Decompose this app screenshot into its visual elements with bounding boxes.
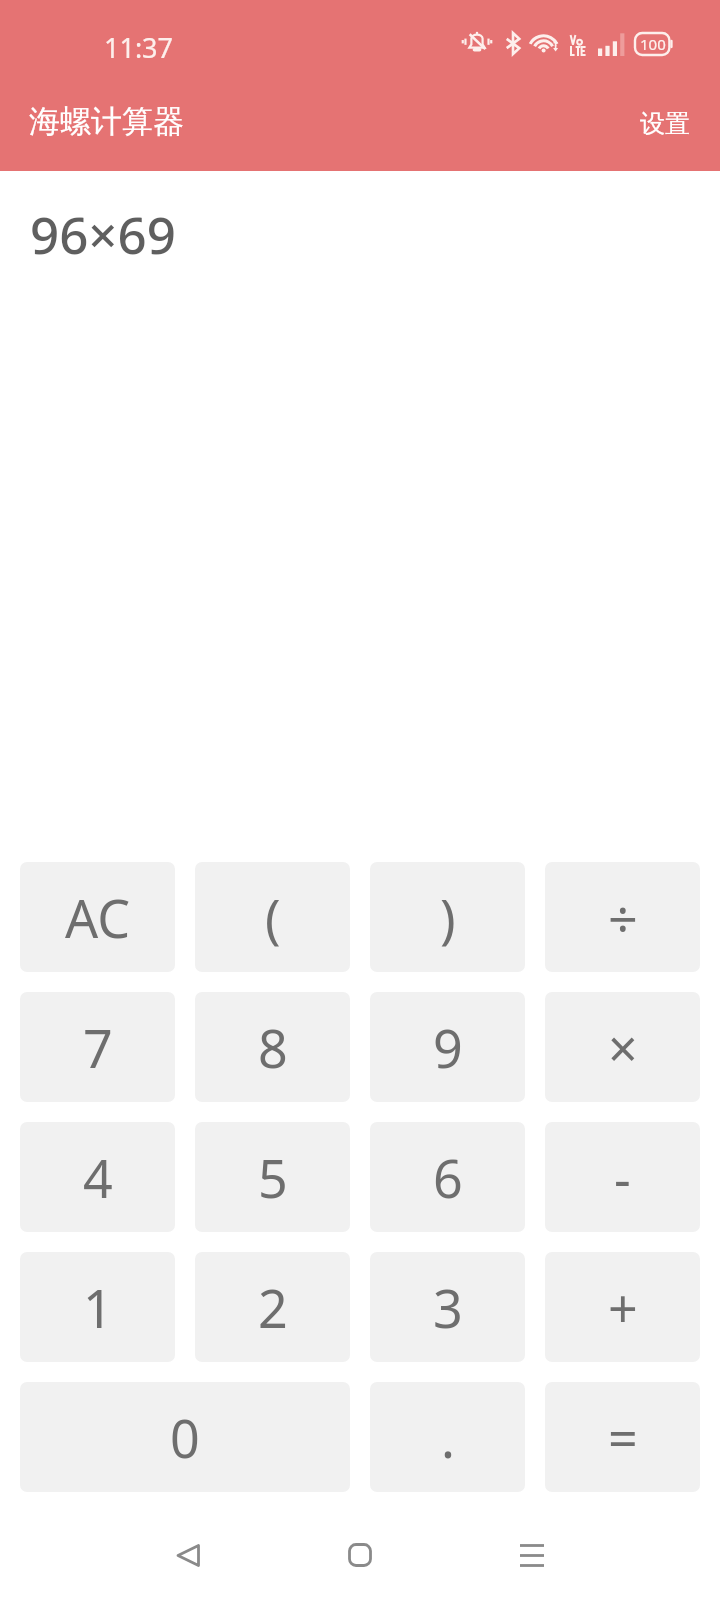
staticText: ÷ (608, 882, 638, 953)
staticText: 1 (83, 1272, 113, 1343)
button[interactable]: . (370, 1382, 525, 1492)
staticText: × (608, 1012, 638, 1083)
staticText: AC (65, 882, 131, 953)
button[interactable]: 6 (370, 1122, 525, 1232)
button[interactable]: 3 (370, 1252, 525, 1362)
staticText: ( (265, 882, 281, 953)
button[interactable]: 4 (20, 1122, 175, 1232)
staticText: 设置 (640, 108, 690, 139)
staticText: 0 (170, 1402, 200, 1473)
button[interactable]: 9 (370, 992, 525, 1102)
staticText: + (608, 1272, 638, 1343)
button[interactable]: ( (195, 862, 350, 972)
button[interactable]: ) (370, 862, 525, 972)
staticText: = (608, 1402, 638, 1473)
button[interactable]: Home (324, 1518, 396, 1592)
button[interactable]: = (545, 1382, 700, 1492)
button[interactable]: 5 (195, 1122, 350, 1232)
button[interactable]: ÷ (545, 862, 700, 972)
button[interactable]: × (545, 992, 700, 1102)
staticText: 8 (258, 1012, 288, 1083)
staticText: ) (440, 882, 456, 953)
staticText: 6 (433, 1142, 463, 1213)
staticText: 9 (433, 1012, 463, 1083)
staticText: . (441, 1402, 455, 1473)
staticText: 7 (83, 1012, 113, 1083)
button[interactable]: 2 (195, 1252, 350, 1362)
button[interactable]: 7 (20, 992, 175, 1102)
button[interactable]: 8 (195, 992, 350, 1102)
button[interactable]: AC (20, 862, 175, 972)
staticText: 5 (258, 1142, 288, 1213)
staticText: 2 (258, 1272, 288, 1343)
button[interactable]: 1 (20, 1252, 175, 1362)
button[interactable]: Back (152, 1518, 224, 1592)
staticText: - (614, 1142, 631, 1213)
staticText: 11:37 (104, 29, 174, 66)
button[interactable]: Recent apps (496, 1518, 568, 1592)
staticText: 100 (640, 34, 666, 54)
staticText: 海螺计算器 (29, 102, 184, 141)
button[interactable]: 0 (20, 1382, 350, 1492)
staticText: 4 (83, 1142, 113, 1213)
button[interactable]: + (545, 1252, 700, 1362)
button[interactable]: 设置 (606, 90, 720, 157)
button[interactable]: - (545, 1122, 700, 1232)
staticText: 3 (433, 1272, 463, 1343)
staticText: 96×69 (30, 199, 176, 268)
